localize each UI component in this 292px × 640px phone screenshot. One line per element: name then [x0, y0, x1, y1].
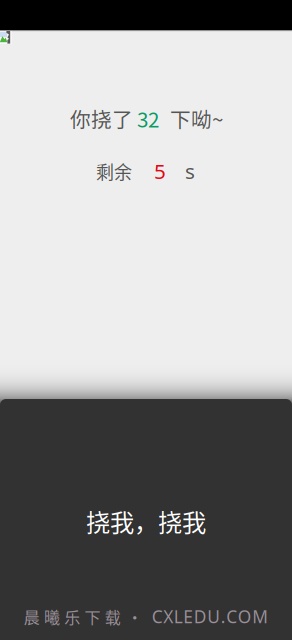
staticText: 32	[137, 103, 159, 133]
staticText: 乐	[64, 605, 80, 628]
staticText: •	[127, 605, 143, 628]
staticText: s	[185, 157, 195, 185]
staticText: E	[183, 605, 193, 628]
staticText: 5	[154, 157, 166, 185]
staticText: D	[194, 605, 207, 628]
staticText: 下呦~	[170, 103, 223, 133]
staticText: 载	[105, 605, 121, 628]
button[interactable]: 挠我，挠我	[0, 400, 292, 640]
staticText: X	[163, 605, 173, 628]
staticText: 下	[85, 605, 101, 628]
staticText: O	[238, 605, 252, 628]
staticText: 曦	[44, 605, 60, 628]
staticText: L	[174, 605, 183, 628]
staticText: .	[221, 605, 226, 628]
staticText: C	[152, 605, 163, 628]
staticText: 剩余	[96, 158, 132, 184]
staticText: 晨	[24, 605, 40, 628]
staticText: C	[226, 605, 237, 628]
staticText: 挠我，挠我	[86, 503, 206, 539]
staticText: M	[252, 605, 268, 628]
staticText: U	[207, 605, 220, 628]
staticText: 你挠了	[70, 103, 133, 133]
